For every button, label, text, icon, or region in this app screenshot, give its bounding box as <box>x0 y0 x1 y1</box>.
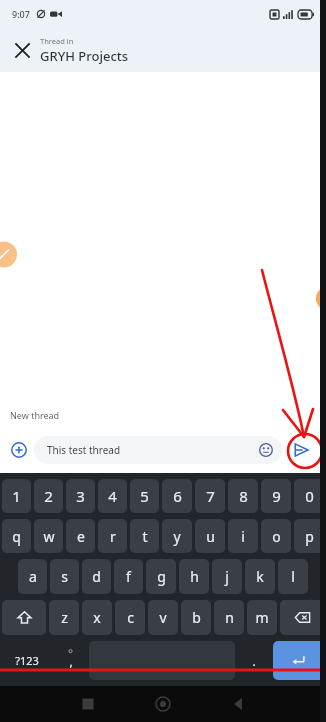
button[interactable]: q <box>2 519 31 553</box>
staticText: 4 <box>108 486 117 506</box>
staticText: 5 <box>140 486 149 506</box>
button[interactable]: x <box>82 600 112 635</box>
button[interactable]: l <box>278 559 308 594</box>
staticText: r <box>110 527 116 546</box>
button[interactable]: 6 <box>162 479 192 513</box>
staticText: d <box>92 567 101 586</box>
button[interactable]: f <box>114 559 143 594</box>
staticText: a <box>29 567 37 586</box>
button[interactable]: 2 <box>34 479 63 513</box>
staticText: 9:07 <box>12 8 30 20</box>
button[interactable]: This test thread <box>34 436 282 464</box>
button[interactable]: 9 <box>261 479 291 513</box>
staticText: l <box>291 567 295 586</box>
staticText: g <box>157 567 166 586</box>
staticText: 1 <box>12 486 21 506</box>
button[interactable]: Emoji <box>257 441 275 459</box>
button[interactable]: 1 <box>2 479 31 513</box>
staticText: m <box>255 608 269 627</box>
staticText: h <box>190 567 199 586</box>
staticText: b <box>192 608 201 627</box>
button[interactable]: Backspace <box>280 600 324 635</box>
button[interactable]: Space <box>89 641 235 680</box>
staticText: i <box>241 527 245 546</box>
button[interactable]: Send <box>286 435 316 465</box>
staticText: c <box>127 608 134 627</box>
button[interactable]: u <box>195 519 225 553</box>
staticText: z <box>61 608 68 627</box>
staticText: Thread in <box>40 36 74 46</box>
button[interactable]: 0 <box>294 479 324 513</box>
button[interactable]: c <box>115 600 145 635</box>
staticText: New thread <box>10 409 60 421</box>
button[interactable]: Enter <box>273 641 324 680</box>
staticText: v <box>159 608 167 627</box>
button[interactable]: 3 <box>66 479 95 513</box>
staticText: w <box>43 527 55 546</box>
button[interactable]: k <box>245 559 275 594</box>
staticText: 9 <box>272 486 281 506</box>
staticText: This test thread <box>47 443 257 457</box>
button[interactable]: Thread in <box>40 36 129 65</box>
button[interactable]: s <box>50 559 79 594</box>
staticText: 2 <box>44 486 53 506</box>
staticText: x <box>93 608 101 627</box>
button[interactable]: Close <box>8 36 36 64</box>
staticText: 6 <box>173 486 182 506</box>
button[interactable]: 5 <box>130 479 159 513</box>
button[interactable]: r <box>98 519 127 553</box>
staticText: 3 <box>76 486 85 506</box>
button[interactable]: v <box>148 600 178 635</box>
staticText: q <box>12 527 21 546</box>
button[interactable]: e <box>66 519 95 553</box>
staticText: p <box>305 527 314 546</box>
staticText: u <box>206 527 215 546</box>
staticText: 0 <box>305 486 314 506</box>
staticText: s <box>61 567 68 586</box>
button[interactable]: ?123 <box>2 641 52 680</box>
button[interactable]: o <box>261 519 291 553</box>
staticText: y <box>173 527 181 546</box>
button[interactable]: Shift <box>2 600 46 635</box>
button[interactable]: g <box>146 559 176 594</box>
button[interactable]: Add attachment <box>4 435 34 465</box>
button[interactable]: h <box>179 559 209 594</box>
button[interactable]: j <box>212 559 242 594</box>
button[interactable]: 8 <box>228 479 258 513</box>
button[interactable]: m <box>247 600 277 635</box>
staticText: o <box>272 527 281 546</box>
staticText: 8 <box>239 486 248 506</box>
button[interactable]: z <box>49 600 79 635</box>
button[interactable]: y <box>162 519 192 553</box>
button[interactable]: p <box>294 519 324 553</box>
staticText: , <box>69 653 73 669</box>
staticText: k <box>256 567 264 586</box>
staticText: j <box>225 567 229 586</box>
button[interactable]: 7 <box>195 479 225 513</box>
staticText: e <box>77 527 85 546</box>
button[interactable]: a <box>18 559 47 594</box>
button[interactable]: . <box>238 641 270 680</box>
staticText: t <box>142 527 148 546</box>
staticText: . <box>252 653 256 669</box>
button[interactable]: b <box>181 600 211 635</box>
staticText: n <box>225 608 234 627</box>
button[interactable]: i <box>228 519 258 553</box>
button[interactable]: 4 <box>98 479 127 513</box>
button[interactable]: , <box>55 641 86 680</box>
staticText: 7 <box>206 486 215 506</box>
button[interactable]: d <box>82 559 111 594</box>
staticText: f <box>126 567 131 586</box>
button[interactable]: t <box>130 519 159 553</box>
button[interactable]: n <box>214 600 244 635</box>
staticText: ?123 <box>15 653 39 668</box>
button[interactable]: w <box>34 519 63 553</box>
staticText: GRYH Projects <box>40 47 129 65</box>
